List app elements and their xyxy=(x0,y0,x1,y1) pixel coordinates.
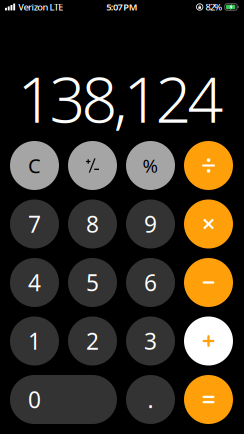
button[interactable]: zero xyxy=(10,375,117,424)
button[interactable]: equals xyxy=(184,375,233,424)
button[interactable]: plus minus xyxy=(68,141,117,190)
button[interactable]: C xyxy=(10,141,59,190)
button[interactable]: multiply xyxy=(184,199,233,248)
button[interactable]: plus xyxy=(184,316,233,365)
staticText: 82% xyxy=(205,1,222,13)
button[interactable]: 9 xyxy=(126,199,175,248)
staticText: 2 xyxy=(86,326,99,356)
staticText: 4 xyxy=(28,267,41,297)
button[interactable]: 2 xyxy=(68,316,117,365)
staticText: Verizon LTE xyxy=(18,1,63,13)
staticText: 3 xyxy=(144,326,157,356)
staticText: . xyxy=(147,384,153,414)
button[interactable]: 4 xyxy=(10,258,59,307)
button[interactable]: 5 xyxy=(68,258,117,307)
button[interactable]: . xyxy=(126,375,175,424)
button[interactable]: 6 xyxy=(126,258,175,307)
button[interactable]: 7 xyxy=(10,199,59,248)
button[interactable]: % xyxy=(126,141,175,190)
button[interactable]: 8 xyxy=(68,199,117,248)
staticText: C xyxy=(28,152,41,179)
button[interactable]: 1 xyxy=(10,316,59,365)
button[interactable]: minus xyxy=(184,258,233,307)
staticText: 1 xyxy=(28,326,41,356)
staticText: 6 xyxy=(144,267,157,297)
staticText: 8 xyxy=(86,209,99,239)
staticText: % xyxy=(142,153,158,178)
staticText: 9 xyxy=(144,209,157,239)
button[interactable]: divide xyxy=(184,141,233,190)
staticText: 0 xyxy=(28,384,41,414)
staticText: 5:07 PM xyxy=(106,1,138,13)
button[interactable]: 3 xyxy=(126,316,175,365)
staticText: 138,124 xyxy=(17,57,223,140)
staticText: 7 xyxy=(28,209,41,239)
staticText: 5 xyxy=(86,267,99,297)
